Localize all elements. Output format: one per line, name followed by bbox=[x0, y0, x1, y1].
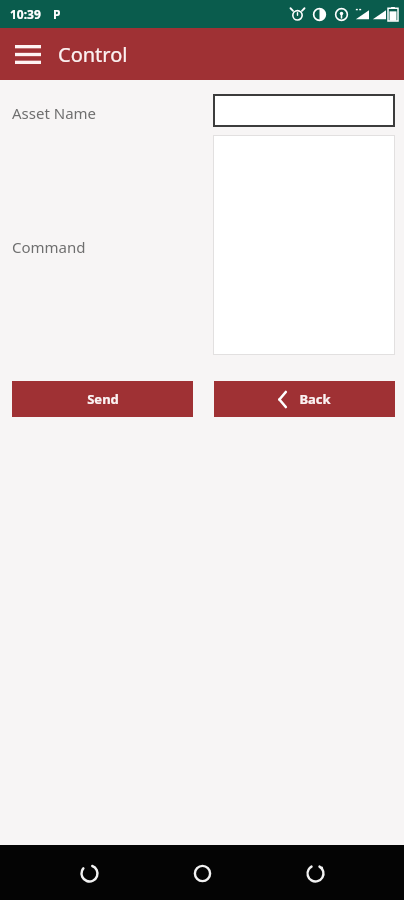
staticText: Control bbox=[58, 41, 128, 68]
button[interactable]: Back bbox=[65, 849, 113, 897]
staticText: 10:39 bbox=[10, 6, 41, 22]
staticText: Command bbox=[12, 237, 86, 257]
button[interactable] bbox=[213, 135, 395, 355]
button[interactable]: Open navigation menu bbox=[8, 34, 48, 74]
button[interactable] bbox=[213, 94, 395, 127]
button[interactable]: Back bbox=[214, 381, 395, 417]
button[interactable]: Recent apps bbox=[291, 849, 339, 897]
staticText: P bbox=[53, 6, 61, 22]
button[interactable]: Send bbox=[12, 381, 193, 417]
button[interactable]: Home bbox=[178, 849, 226, 897]
staticText: Back bbox=[299, 390, 331, 408]
staticText: Asset Name bbox=[12, 103, 97, 123]
staticText: Send bbox=[87, 390, 119, 408]
